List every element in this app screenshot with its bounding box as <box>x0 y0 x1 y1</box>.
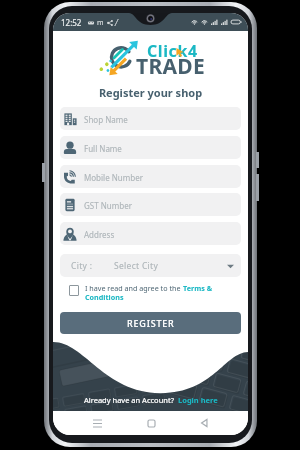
staticText: I have read and agree to the <box>85 283 183 293</box>
button[interactable]: Mobile Number <box>60 165 241 188</box>
button[interactable]: GST Number <box>60 193 241 216</box>
staticText: Register your shop <box>53 85 248 100</box>
button[interactable]: I agree to terms and conditions <box>69 285 79 296</box>
button[interactable]: Home <box>141 413 161 433</box>
button[interactable]: Shop Name <box>60 107 241 130</box>
staticText: TRADE <box>136 52 206 81</box>
staticText: Already have an Account? <box>84 395 174 405</box>
button[interactable]: Full Name <box>60 136 241 159</box>
staticText: Select City <box>114 260 159 272</box>
button[interactable]: Login here <box>178 395 218 405</box>
staticText: Click4 <box>147 40 198 62</box>
button[interactable]: REGISTER <box>60 312 241 334</box>
button[interactable]: Address <box>60 222 241 245</box>
button[interactable]: Recents <box>87 413 107 433</box>
staticText: ⁄ <box>116 17 118 28</box>
button[interactable]: Back <box>194 413 214 433</box>
staticText: City : <box>71 260 93 272</box>
button[interactable]: Terms & <box>183 283 213 293</box>
staticText: Full Name <box>84 143 122 154</box>
staticText: 12:52 <box>61 17 82 28</box>
button[interactable]: Conditions <box>85 292 124 302</box>
staticText: REGISTER <box>127 317 175 329</box>
staticText: m <box>97 18 104 28</box>
staticText: Shop Name <box>84 114 128 125</box>
staticText: Address <box>84 229 115 240</box>
button[interactable]: City : <box>60 254 241 277</box>
staticText: Mobile Number <box>84 172 143 183</box>
staticText: GST Number <box>84 200 132 211</box>
